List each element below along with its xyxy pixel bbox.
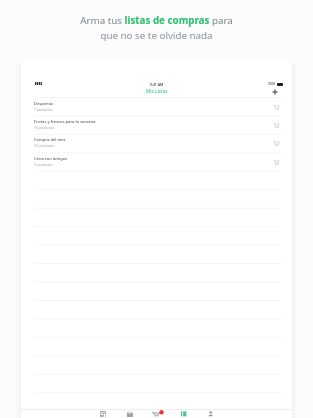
button[interactable]: Estadisticas: [179, 409, 188, 418]
staticText: 9:41 AM: [150, 82, 164, 87]
staticText: Despensa: [34, 101, 53, 106]
staticText: que no se te olvide nada: [100, 29, 213, 42]
button[interactable]: Carrito: [152, 409, 161, 418]
staticText: 14 productos: [34, 125, 55, 129]
button[interactable]: Cena con amigos: [21, 153, 292, 171]
staticText: 7 productos: [34, 107, 53, 111]
staticText: 100%: [268, 82, 276, 86]
button[interactable]: Despensa: [21, 98, 292, 116]
button[interactable]: Perfil: [206, 409, 215, 418]
button[interactable]: Tiendas: [98, 409, 107, 418]
staticText: Frutas y frescos para la semana: [34, 119, 96, 124]
staticText: 23 productos: [34, 143, 55, 147]
button[interactable]: Compra del mes: [21, 134, 292, 152]
staticText: Arma tus listas de compras para: [80, 14, 233, 27]
staticText: Compra del mes: [34, 137, 66, 142]
staticText: 9 productos: [34, 162, 53, 166]
button[interactable]: Despensa: [125, 409, 134, 418]
staticText: Mis Listas: [146, 88, 168, 94]
staticText: Cena con amigos: [34, 156, 68, 161]
button[interactable]: Frutas y frescos para la semana: [21, 116, 292, 134]
button[interactable]: Nueva lista: [268, 85, 282, 99]
